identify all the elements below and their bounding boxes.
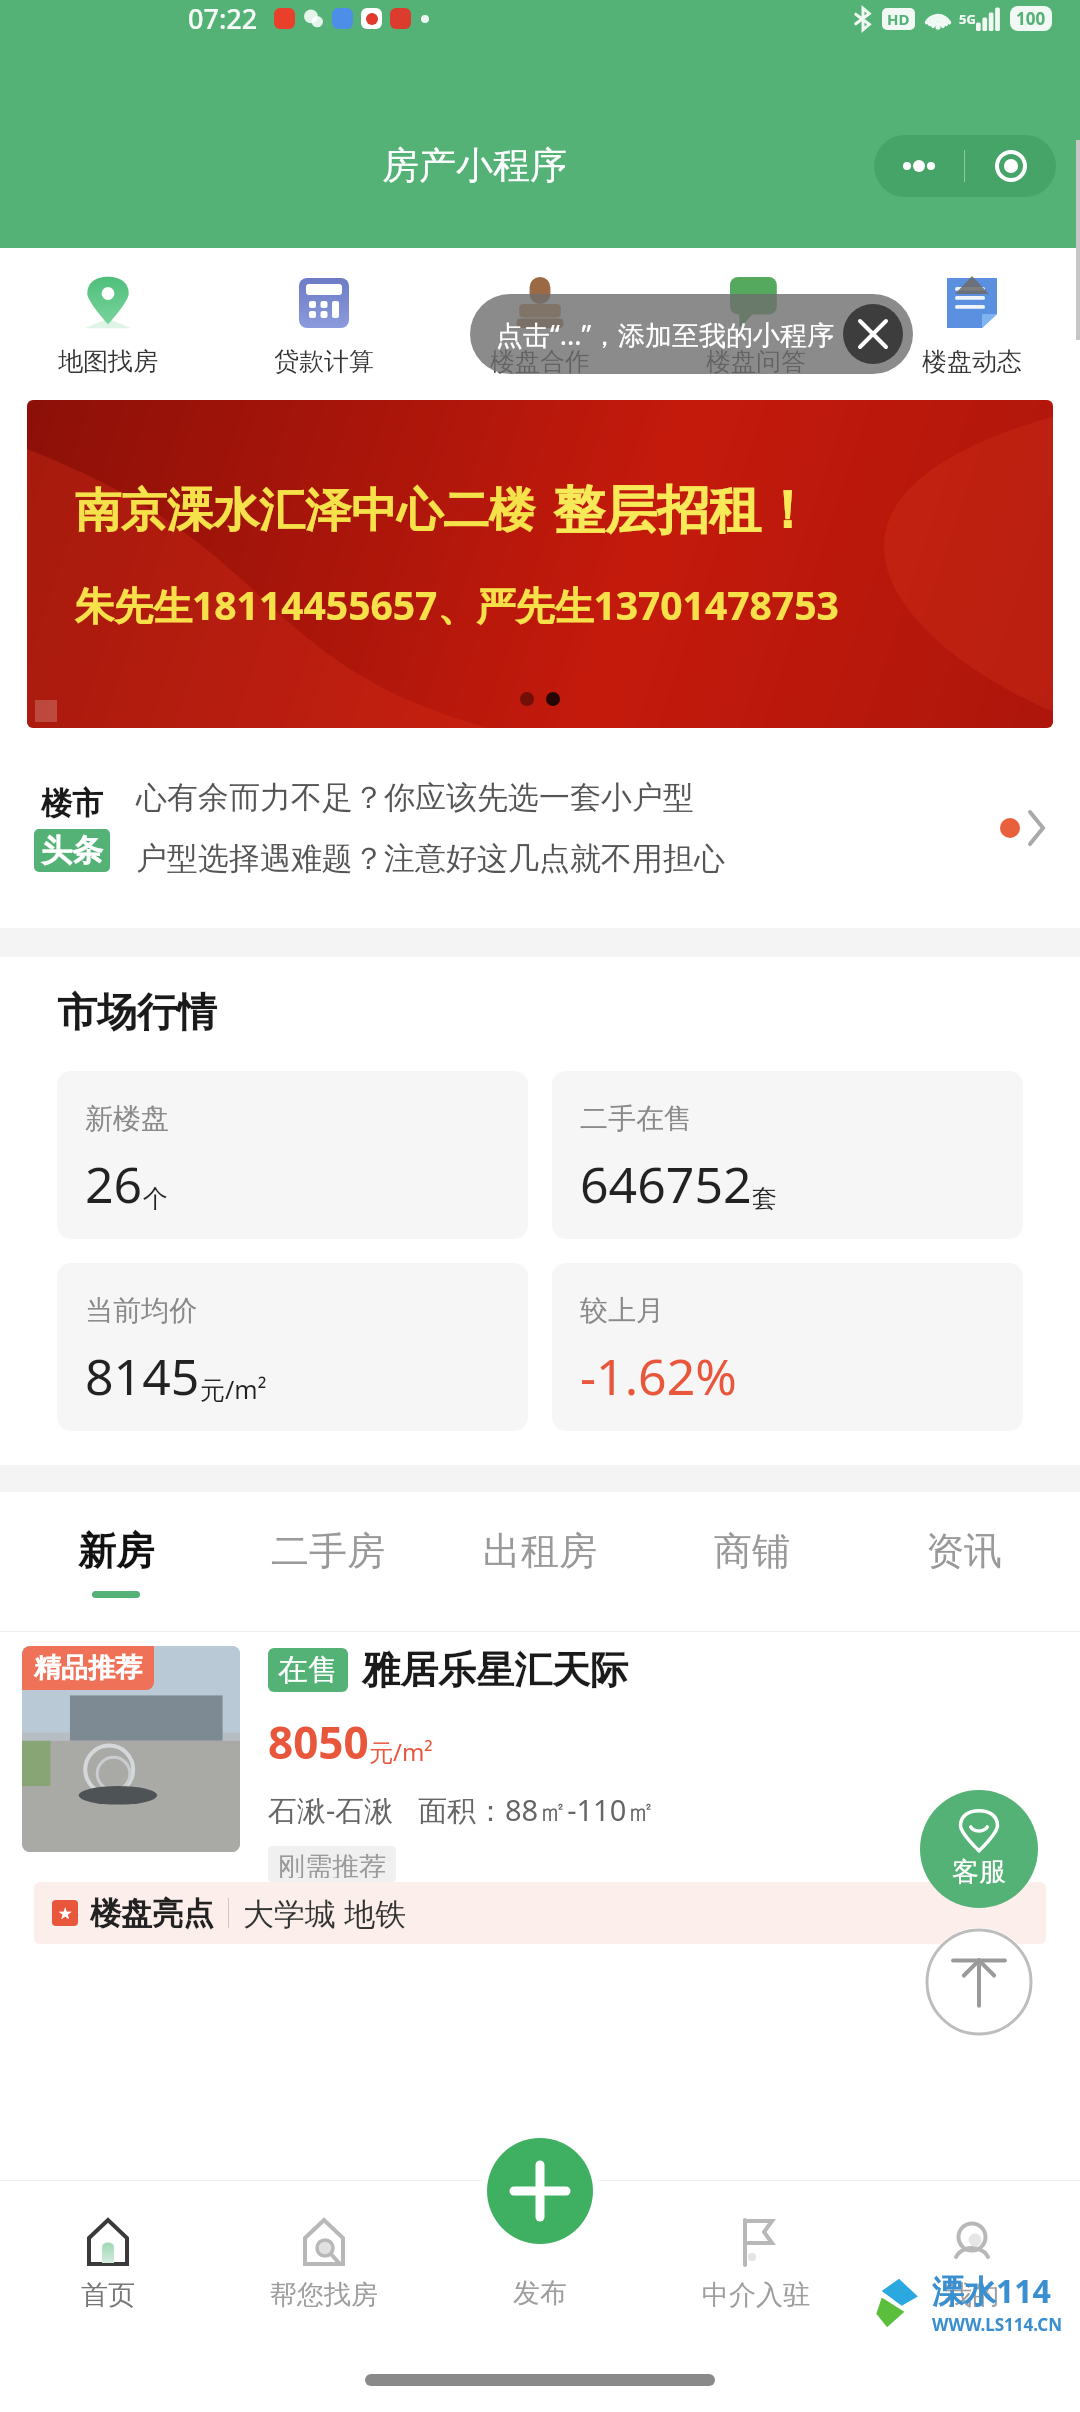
staticText: 当前均价 bbox=[85, 1293, 197, 1328]
staticText: 100 bbox=[1016, 7, 1046, 30]
staticText: 个 bbox=[143, 1183, 168, 1214]
button[interactable]: Close tip bbox=[843, 304, 903, 364]
button[interactable]: 发布 bbox=[487, 2138, 593, 2244]
button[interactable]: 发布 bbox=[432, 2180, 648, 2348]
staticText: 心有余而力不足？你应该先选一套小户型 bbox=[136, 778, 694, 817]
button[interactable]: 当前均价 bbox=[57, 1263, 528, 1431]
staticText: 头条 bbox=[41, 831, 103, 870]
staticText: 大学城 地铁 bbox=[243, 1892, 407, 1934]
staticText: 雅居乐星汇天际 bbox=[362, 1646, 628, 1694]
button[interactable]: 新楼盘 bbox=[57, 1071, 528, 1239]
staticText: 新楼盘 bbox=[85, 1101, 169, 1136]
staticText: 南京溧水汇泽中心二楼 bbox=[75, 482, 535, 540]
staticText: 点击“...”，添加至我的小程序 bbox=[496, 316, 835, 353]
staticText: 石湫-石湫 bbox=[268, 1790, 394, 1830]
button[interactable]: ★ bbox=[34, 1882, 1046, 1944]
staticText: 26 bbox=[85, 1150, 143, 1218]
other: More options bbox=[874, 135, 964, 197]
staticText: 中介入驻 bbox=[702, 2278, 810, 2312]
button[interactable]: 较上月 bbox=[552, 1263, 1023, 1431]
staticText: 首页 bbox=[81, 2278, 135, 2312]
staticText: HD bbox=[887, 9, 910, 29]
button[interactable]: 贷款计算 bbox=[216, 248, 432, 400]
button[interactable]: 帮您找房 bbox=[216, 2180, 432, 2348]
staticText: 二手在售 bbox=[580, 1101, 692, 1136]
staticText: 房产小程序 bbox=[382, 142, 567, 189]
staticText: 较上月 bbox=[580, 1293, 664, 1328]
staticText: 客服 bbox=[952, 1855, 1006, 1889]
staticText: ★ bbox=[58, 1904, 73, 1923]
staticText: 刚需推荐 bbox=[278, 1850, 386, 1878]
button[interactable]: 南京溧水汇泽中心二楼 bbox=[27, 400, 1053, 728]
staticText: 出租房 bbox=[483, 1527, 597, 1575]
staticText: 户型选择遇难题？注意好这几点就不用担心 bbox=[136, 839, 725, 878]
staticText: 地图找房 bbox=[58, 346, 158, 377]
button[interactable]: Scroll to top bbox=[925, 1928, 1033, 2036]
button[interactable]: 楼市 bbox=[34, 728, 1046, 928]
staticText: 楼盘问答 bbox=[706, 346, 806, 377]
staticText: 在售 bbox=[278, 1651, 338, 1689]
staticText: 646752 bbox=[580, 1150, 752, 1218]
staticText: 元/m² bbox=[369, 1735, 433, 1768]
staticText: 面积：88㎡-110㎡ bbox=[418, 1790, 656, 1830]
staticText: 新房 bbox=[78, 1527, 154, 1575]
staticText: 07:22 bbox=[188, 0, 258, 37]
button[interactable]: 商铺 bbox=[646, 1492, 858, 1632]
button[interactable]: 二手房 bbox=[222, 1492, 434, 1632]
staticText: 5G bbox=[959, 10, 976, 28]
staticText: 帮您找房 bbox=[270, 2278, 378, 2312]
staticText: 精品推荐 bbox=[34, 1651, 142, 1685]
button[interactable]: More options bbox=[874, 135, 1056, 197]
staticText: 元/m² bbox=[200, 1372, 267, 1406]
button[interactable]: 楼盘合作 bbox=[432, 248, 648, 400]
button[interactable]: 楼盘动态 bbox=[864, 248, 1080, 400]
staticText: 贷款计算 bbox=[274, 346, 374, 377]
button[interactable]: 楼盘问答 bbox=[648, 248, 864, 400]
staticText: 楼盘亮点 bbox=[90, 1894, 214, 1933]
staticText: WWW.LS114.CN bbox=[932, 2313, 1062, 2336]
button[interactable]: 点击“...”，添加至我的小程序 bbox=[470, 294, 913, 374]
staticText: 市场行情 bbox=[57, 987, 217, 1037]
staticText: 商铺 bbox=[714, 1527, 790, 1575]
staticText: 溧水114 bbox=[932, 2269, 1051, 2313]
staticText: 整层招租！ bbox=[553, 478, 813, 544]
button[interactable]: 资讯 bbox=[858, 1492, 1070, 1632]
staticText: 发布 bbox=[513, 2276, 567, 2310]
button[interactable]: 新房 bbox=[10, 1492, 222, 1632]
staticText: 套 bbox=[752, 1183, 777, 1214]
staticText: 8145 bbox=[85, 1342, 200, 1410]
button[interactable]: 首页 bbox=[0, 2180, 216, 2348]
staticText: 资讯 bbox=[926, 1527, 1002, 1575]
button[interactable]: 出租房 bbox=[434, 1492, 646, 1632]
button[interactable]: 二手在售 bbox=[552, 1071, 1023, 1239]
staticText: 楼盘动态 bbox=[922, 346, 1022, 377]
staticText: 朱先生18114455657、严先生13701478753 bbox=[75, 578, 839, 631]
button[interactable]: 精品推荐 bbox=[0, 1632, 1080, 1882]
button[interactable]: 客服 bbox=[920, 1790, 1038, 1908]
staticText: 楼盘合作 bbox=[490, 346, 590, 377]
staticText: 8050 bbox=[268, 1712, 369, 1772]
button[interactable]: 地图找房 bbox=[0, 248, 216, 400]
staticText: 二手房 bbox=[271, 1527, 385, 1575]
staticText: 楼市 bbox=[41, 784, 103, 823]
other: Close mini program bbox=[965, 135, 1056, 197]
staticText: 我的 bbox=[945, 2278, 999, 2312]
button[interactable]: 我的 bbox=[864, 2180, 1080, 2348]
button[interactable]: 中介入驻 bbox=[648, 2180, 864, 2348]
staticText: -1.62% bbox=[580, 1342, 737, 1410]
